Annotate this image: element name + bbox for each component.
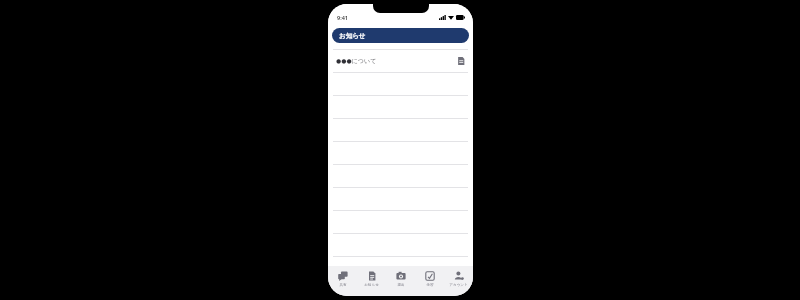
other: お知らせ: [367, 271, 377, 281]
staticText: ●●●について: [336, 57, 377, 65]
staticText: 共有: [339, 283, 347, 288]
button[interactable]: お知らせ: [332, 28, 469, 43]
button[interactable]: 学習: [415, 266, 444, 296]
other: 提出: [396, 271, 406, 281]
button[interactable]: アカウント: [444, 266, 473, 296]
button[interactable]: ●●●について: [333, 50, 468, 72]
button[interactable]: お知らせ: [357, 266, 386, 296]
staticText: 学習: [426, 283, 434, 288]
button[interactable]: 共有: [328, 266, 357, 296]
staticText: お知らせ: [364, 283, 379, 288]
other: 共有: [338, 271, 348, 281]
staticText: 9:41: [337, 14, 348, 21]
staticText: お知らせ: [339, 32, 366, 40]
other: Document: [457, 57, 465, 65]
button[interactable]: 提出: [386, 266, 415, 296]
other: 学習: [425, 271, 435, 281]
staticText: 提出: [397, 283, 405, 288]
staticText: アカウント: [449, 283, 468, 288]
other: アカウント: [454, 271, 464, 281]
